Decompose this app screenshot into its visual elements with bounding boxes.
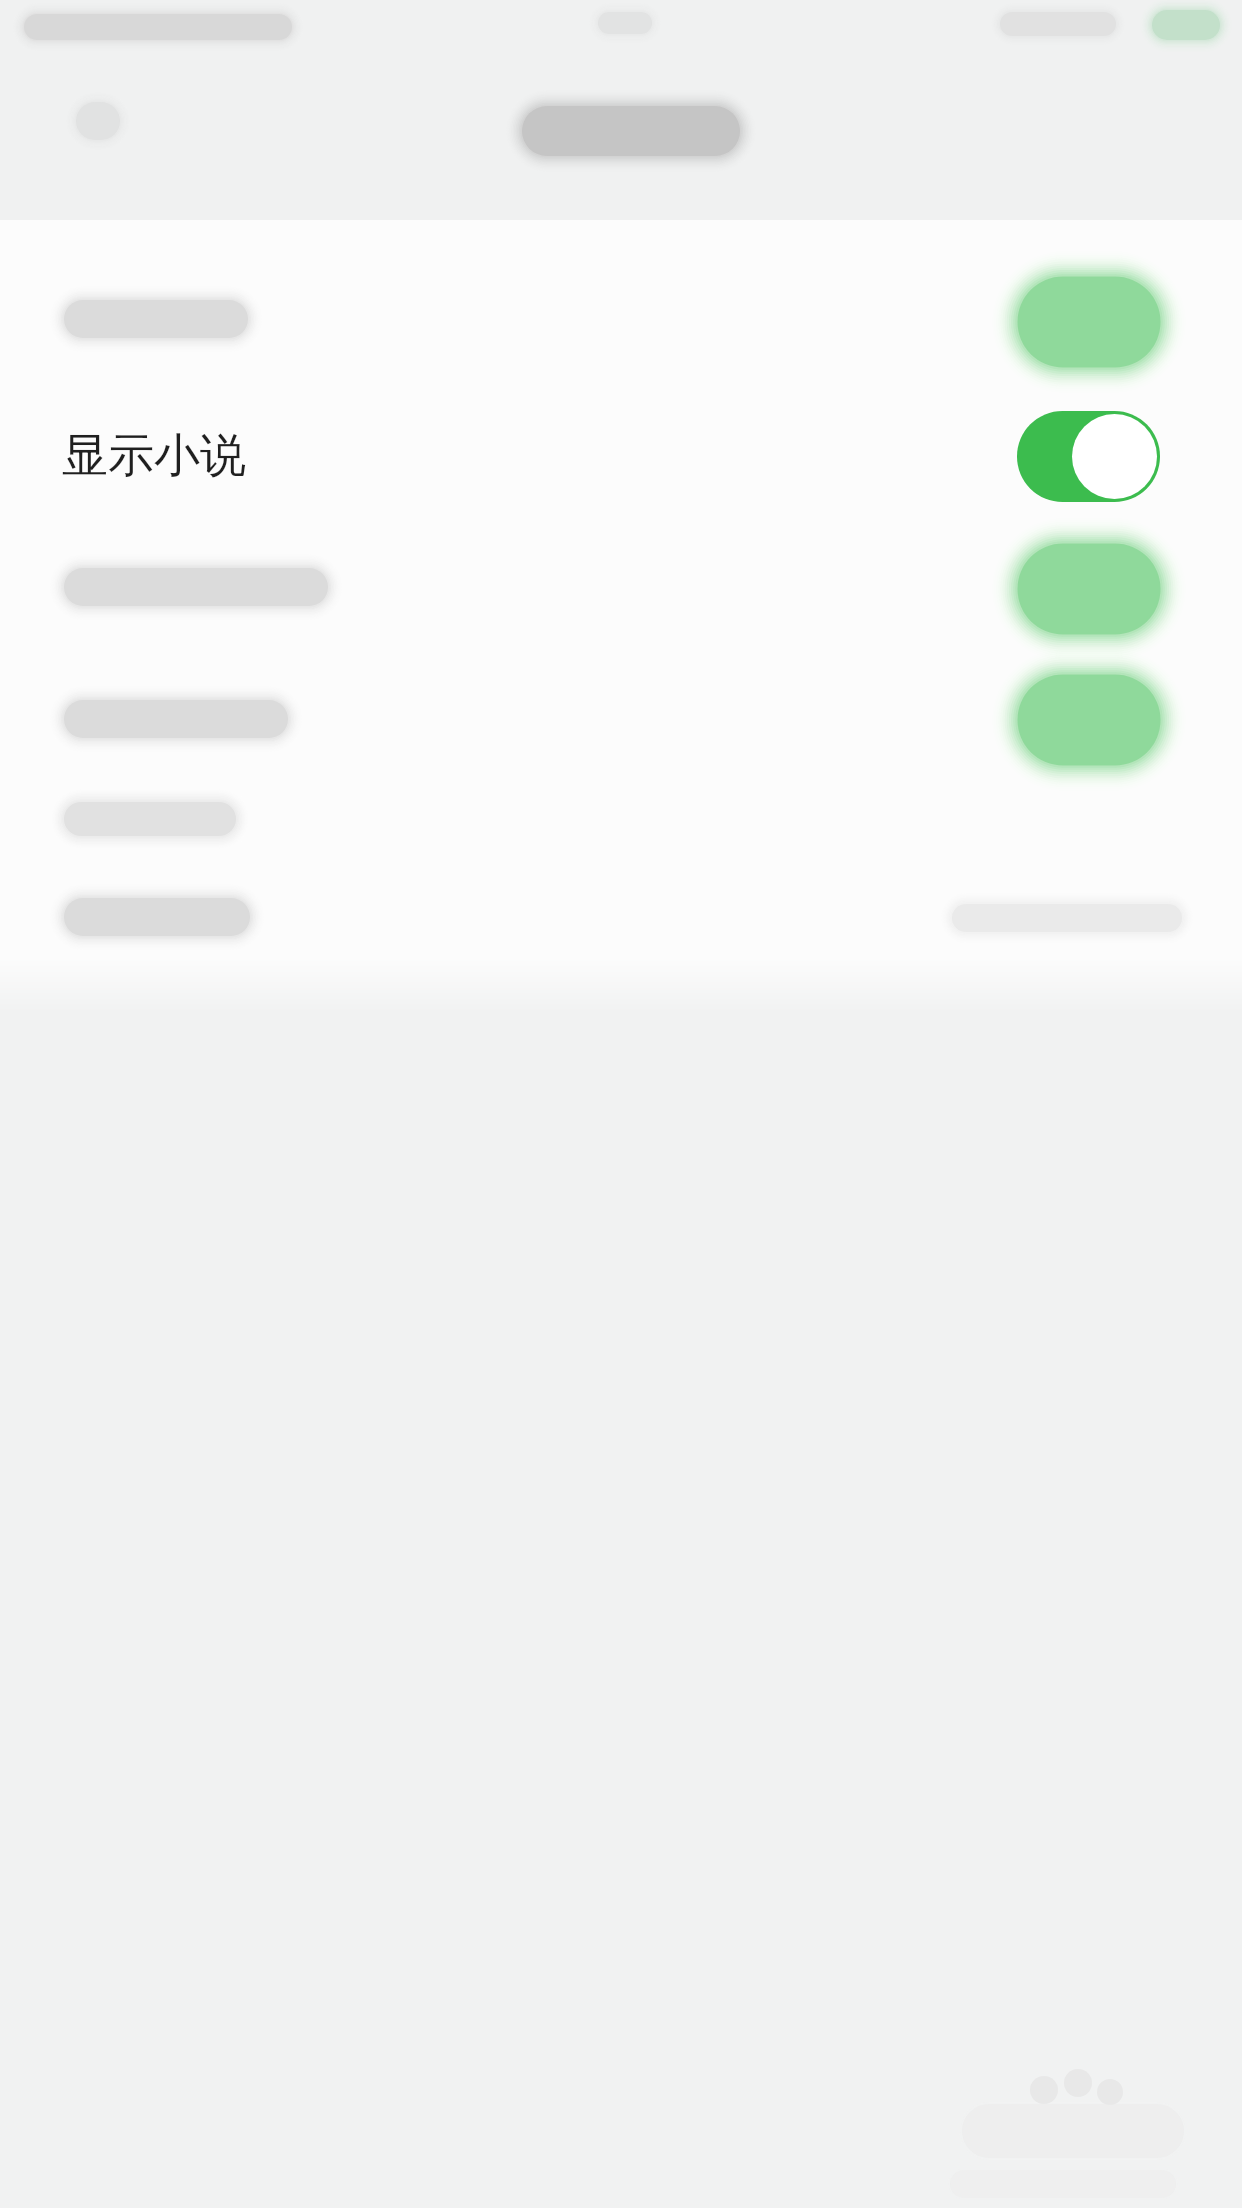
staticText: 显示小说 [62,427,246,485]
button[interactable]: 显示小说 [0,392,1242,520]
button[interactable]: 显示小说 开关，已开启 [1017,411,1160,502]
